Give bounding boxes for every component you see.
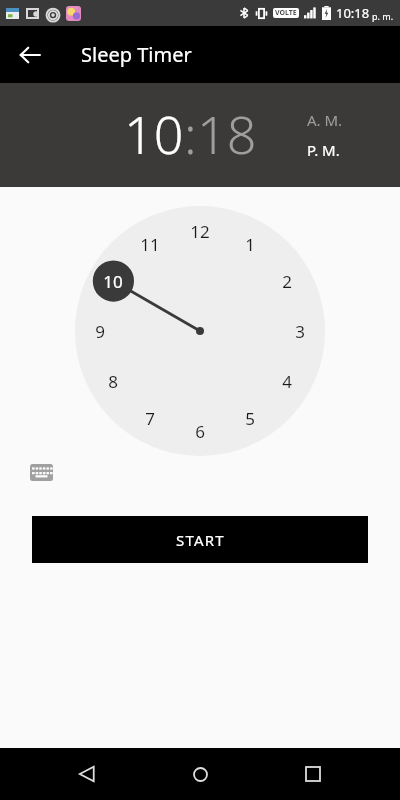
button[interactable]: 1 [234,230,266,258]
button[interactable]: Back [61,748,113,800]
staticText: START [176,530,225,550]
staticText: 9 [95,320,105,343]
button[interactable]: 10 [124,98,184,169]
staticText: VOLTE [275,8,297,18]
staticText: 4 [282,370,292,393]
staticText: 10 [103,270,123,293]
staticText: 7 [145,407,155,430]
staticText: 5 [245,407,255,430]
button[interactable]: 11 [134,230,166,258]
button[interactable]: 9 [84,317,116,345]
staticText: 3 [295,320,305,343]
button[interactable]: A. M. [307,110,343,130]
button[interactable]: 5 [234,404,266,432]
staticText: 8 [108,370,118,393]
button[interactable]: 3 [284,317,316,345]
button[interactable]: 18 [197,98,257,169]
button[interactable]: Home [174,748,226,800]
staticText: 12 [190,220,210,243]
staticText: 10:18 [336,4,370,22]
button[interactable]: 7 [134,404,166,432]
staticText: 2 [282,270,292,293]
button[interactable]: 12 [184,217,216,245]
button[interactable]: Switch to keyboard input [26,457,56,487]
staticText: p. m. [372,10,394,22]
button[interactable]: 8 [97,367,129,395]
staticText: 11 [140,233,160,256]
staticText: 6 [195,420,205,443]
button[interactable]: 4 [271,367,303,395]
button[interactable]: 2 [271,267,303,295]
staticText: 1 [245,233,255,256]
button[interactable]: START [32,516,368,563]
button[interactable]: 6 [184,417,216,445]
staticText: : [184,98,197,169]
staticText: Sleep Timer [81,41,192,68]
button[interactable]: P. M. [307,140,340,160]
button[interactable]: Recent apps [287,748,339,800]
button[interactable]: 10 [97,267,129,295]
button[interactable]: Back [8,33,52,77]
